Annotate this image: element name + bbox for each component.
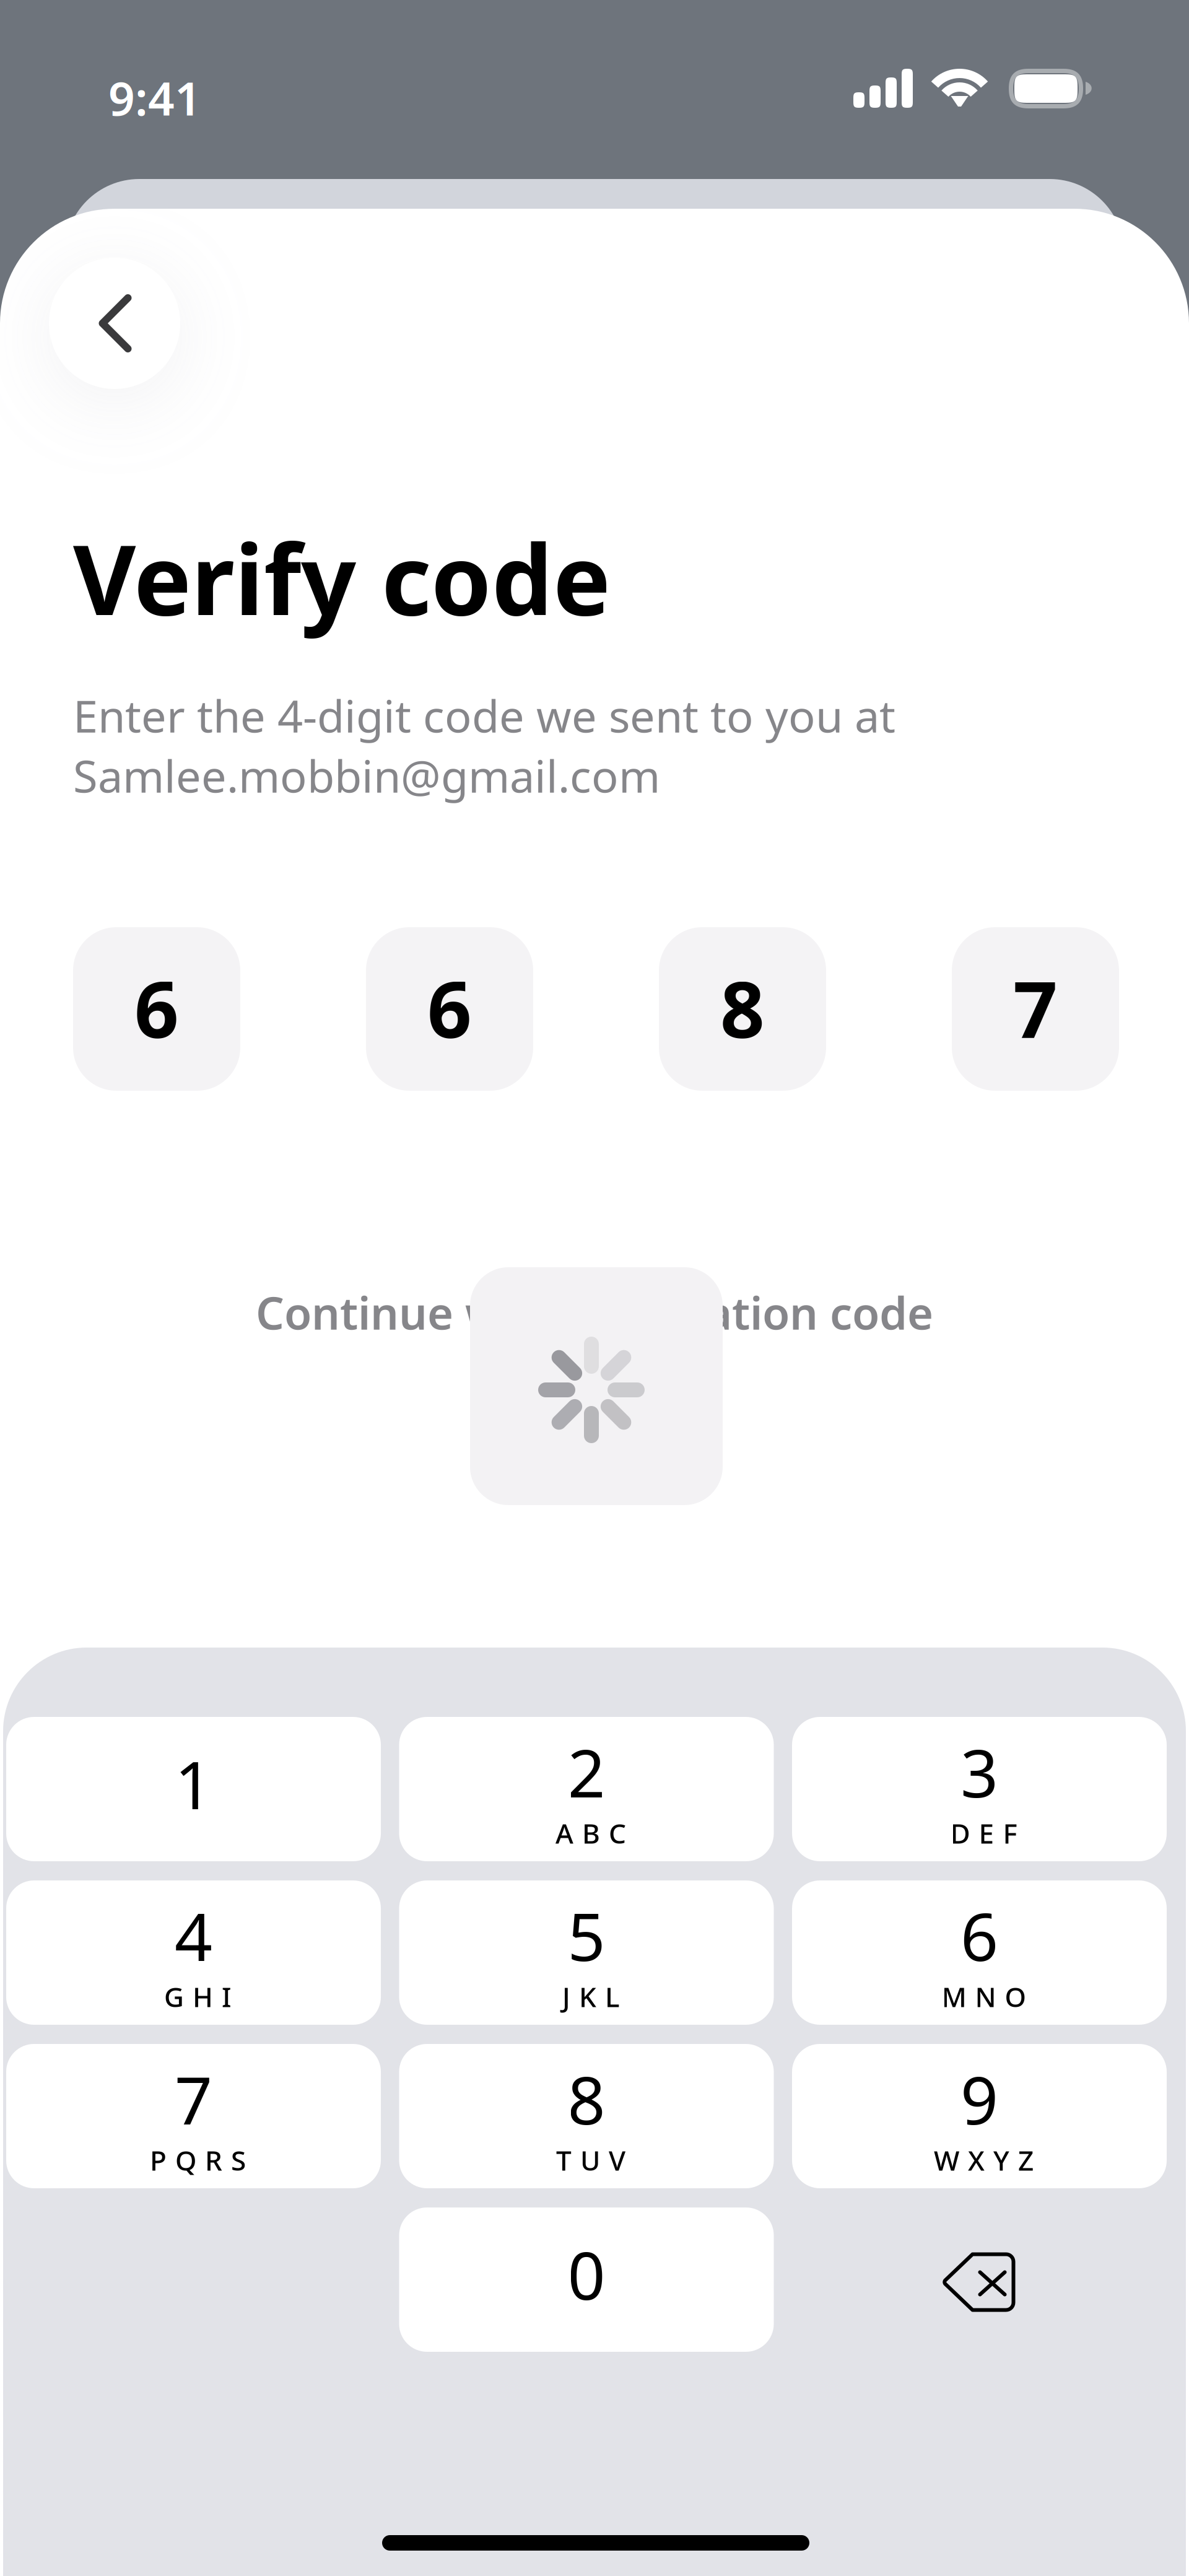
button[interactable]: 6 [792,1880,1167,2025]
staticText: 5 [568,1891,605,1979]
staticText: WXYZ [934,2142,1034,2178]
button[interactable]: 3 [792,1717,1167,1861]
button[interactable]: 9 [792,2044,1167,2188]
staticText: Samlee.mobbin@gmail.com [73,746,660,805]
staticText: PQRS [150,2142,246,2178]
staticText: Continue with verification code [256,1283,933,1342]
staticText: JKL [562,1978,619,2015]
staticText: 1 [175,1740,212,1827]
staticText: MNO [942,1978,1026,2015]
staticText: 6 [134,956,179,1059]
button[interactable]: 8 [399,2044,774,2188]
staticText: 9:41 [108,67,201,128]
button[interactable]: 1 [6,1717,381,1861]
staticText: 4 [175,1891,212,1979]
staticText: 0 [568,2230,605,2318]
staticText: 6 [960,1891,998,1979]
staticText: 2 [568,1728,605,1816]
button[interactable]: Delete [792,2207,1167,2352]
staticText: 7 [175,2055,212,2143]
staticText: TUV [556,2142,625,2178]
staticText: 6 [427,956,472,1059]
staticText: GHI [164,1978,232,2015]
staticText: 9 [960,2055,998,2143]
staticText: 3 [960,1728,998,1816]
staticText: 8 [568,2055,605,2143]
staticText: 8 [720,956,765,1059]
button[interactable]: 2 [399,1717,774,1861]
staticText: Verify code [73,513,611,642]
staticText: 7 [1013,956,1058,1059]
staticText: Enter the 4-digit code we sent to you at [73,686,895,745]
staticText: ABC [555,1815,626,1851]
button[interactable]: Back [25,234,204,413]
button[interactable]: 7 [6,2044,381,2188]
button[interactable]: 4 [6,1880,381,2025]
button[interactable]: 0 [399,2207,774,2352]
button[interactable]: 5 [399,1880,774,2025]
staticText: DEF [950,1815,1017,1851]
